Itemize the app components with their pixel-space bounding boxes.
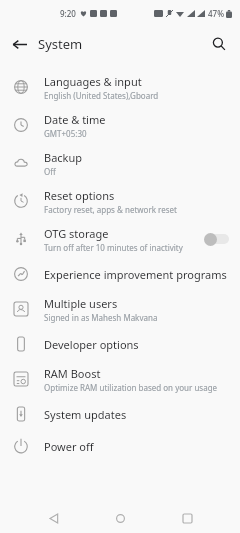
staticText: English (United States),Gboard	[44, 90, 159, 101]
staticText: Optimize RAM utilization based on your u…	[44, 382, 218, 393]
button[interactable]: Power off	[0, 430, 240, 462]
button[interactable]: Experience improvement programs	[0, 258, 240, 290]
staticText: Date & time	[44, 112, 106, 127]
button[interactable]: Backup	[0, 144, 240, 182]
button[interactable]: System updates	[0, 398, 240, 430]
button[interactable]: Recents	[174, 505, 200, 531]
staticText: Experience improvement programs	[44, 267, 227, 282]
staticText: Languages & input	[44, 74, 142, 89]
button[interactable]: OTG storage	[0, 220, 240, 258]
staticText: Developer options	[44, 337, 139, 352]
staticText: 9:20	[60, 8, 76, 19]
button[interactable]: RAM Boost	[0, 360, 240, 398]
staticText: GMT+05:30	[44, 128, 87, 139]
staticText: Signed in as Mahesh Makvana	[44, 312, 158, 323]
staticText: Power off	[44, 439, 94, 454]
button[interactable]: Languages & input	[0, 68, 240, 106]
button[interactable]: Multiple users	[0, 290, 240, 328]
staticText: RAM Boost	[44, 366, 101, 381]
staticText: System	[38, 35, 83, 53]
button[interactable]: Back	[6, 31, 32, 57]
staticText: Reset options	[44, 188, 115, 203]
button[interactable]: Developer options	[0, 328, 240, 360]
staticText: Multiple users	[44, 296, 118, 311]
button[interactable]: Reset options	[0, 182, 240, 220]
staticText: Factory reset, apps & network reset	[44, 204, 177, 215]
staticText: System updates	[44, 407, 127, 422]
staticText: Off	[44, 166, 56, 177]
staticText: Turn off after 10 minutes of inactivity	[44, 242, 183, 253]
staticText: Backup	[44, 150, 83, 165]
staticText: 47%	[208, 8, 224, 19]
button[interactable]: Search	[206, 31, 232, 57]
button[interactable]: Home	[107, 505, 133, 531]
button[interactable]: Date & time	[0, 106, 240, 144]
staticText: OTG storage	[44, 226, 109, 241]
button[interactable]: Back	[41, 505, 67, 531]
